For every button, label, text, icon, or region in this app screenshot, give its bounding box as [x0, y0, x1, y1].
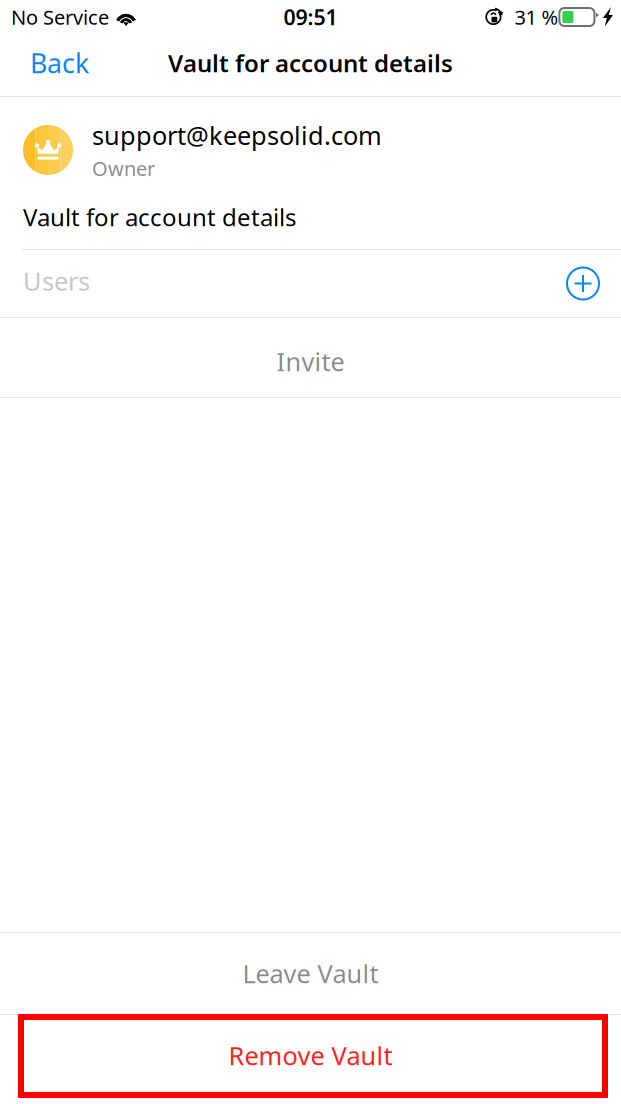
staticText: support@keepsolid.com — [92, 118, 382, 152]
staticText: Back — [30, 45, 89, 81]
staticText: Vault for account details — [168, 47, 453, 79]
button[interactable]: Remove Vault — [0, 1015, 621, 1104]
staticText: Users — [23, 264, 90, 298]
button[interactable]: Leave Vault — [0, 933, 621, 1014]
button[interactable]: Invite — [0, 318, 621, 397]
staticText: Vault for account details — [23, 201, 296, 233]
staticText: 31 % — [514, 4, 558, 30]
staticText: Owner — [92, 155, 155, 182]
staticText: 09:51 — [283, 3, 337, 31]
staticText: Leave Vault — [242, 957, 378, 990]
button[interactable]: Back — [0, 34, 109, 96]
staticText: Remove Vault — [228, 1039, 392, 1072]
staticText: No Service — [11, 4, 109, 30]
staticText: Invite — [276, 345, 344, 378]
button[interactable]: Add user — [559, 259, 607, 307]
